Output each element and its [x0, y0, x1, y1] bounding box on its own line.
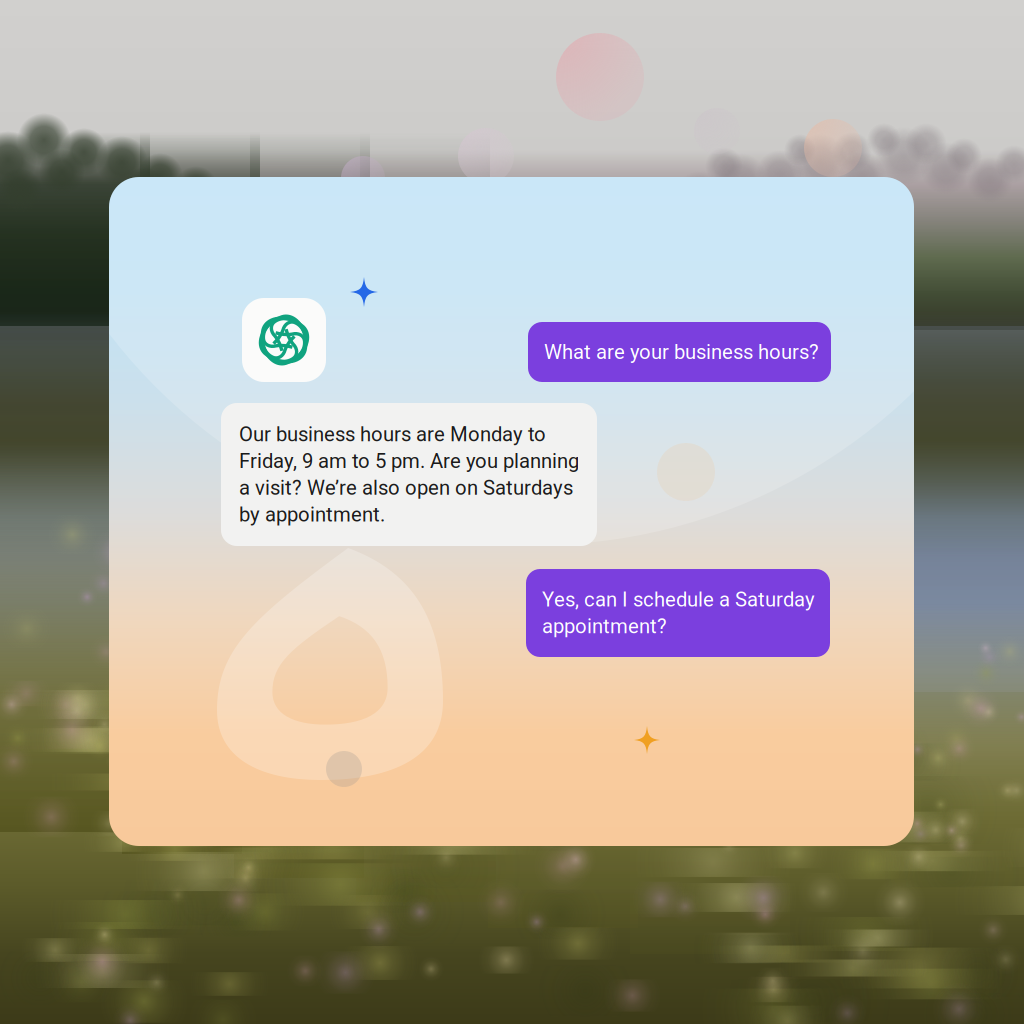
staticText: Friday, 9 am to 5 pm. Are you planning — [239, 449, 579, 473]
staticText: Yes, can I schedule a Saturday — [542, 588, 815, 612]
button[interactable]: What are your business hours? — [528, 322, 831, 382]
staticText: by appointment. — [239, 503, 385, 527]
staticText: Our business hours are Monday to — [239, 422, 546, 446]
staticText: What are your business hours? — [544, 340, 819, 364]
staticText: a visit? We’re also open on Saturdays — [239, 476, 573, 500]
button[interactable]: Yes, can I schedule a Saturday — [526, 569, 830, 657]
staticText: appointment? — [542, 614, 667, 638]
